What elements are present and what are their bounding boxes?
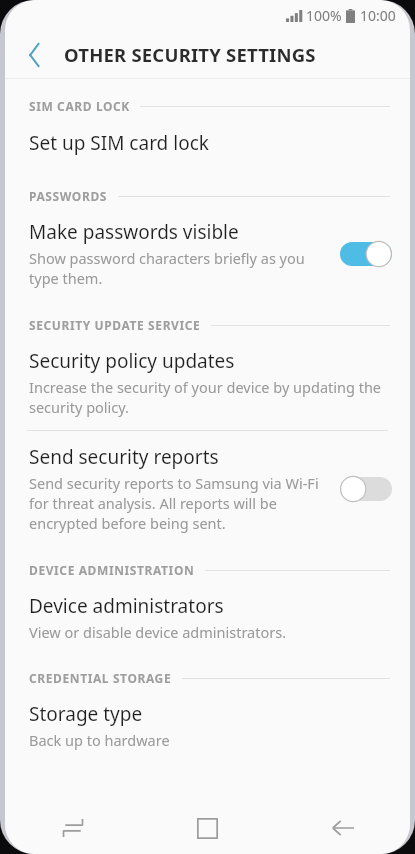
- staticText: Set up SIM card lock: [29, 130, 209, 156]
- staticText: Send security reports to Samsung via Wi-…: [29, 473, 330, 533]
- staticText: Storage type: [29, 701, 143, 727]
- staticText: OTHER SECURITY SETTINGS: [64, 42, 316, 67]
- button[interactable]: Storage type: [5, 686, 410, 762]
- staticText: View or disable device administrators.: [29, 622, 287, 642]
- staticText: SECURITY UPDATE SERVICE: [29, 317, 201, 333]
- button[interactable]: Toggle on: [340, 239, 392, 269]
- staticText: Send security reports: [29, 444, 219, 470]
- button[interactable]: Toggle off: [340, 474, 392, 504]
- staticText: Make passwords visible: [29, 219, 239, 245]
- staticText: SIM CARD LOCK: [29, 98, 130, 114]
- staticText: Device administrators: [29, 593, 224, 619]
- staticText: 100%: [306, 6, 342, 25]
- button[interactable]: Back: [13, 33, 57, 77]
- staticText: CREDENTIAL STORAGE: [29, 670, 172, 686]
- button[interactable]: Home: [140, 802, 275, 854]
- button[interactable]: Send security reports: [5, 431, 410, 549]
- button[interactable]: Device administrators: [5, 578, 410, 657]
- staticText: Show password characters briefly as you …: [29, 248, 330, 288]
- staticText: DEVICE ADMINISTRATION: [29, 562, 195, 578]
- button[interactable]: Security policy updates: [5, 333, 410, 430]
- button[interactable]: Back: [275, 802, 410, 854]
- staticText: 10:00: [360, 6, 396, 25]
- staticText: PASSWORDS: [29, 188, 108, 204]
- staticText: Increase the security of your device by …: [29, 377, 392, 417]
- staticText: Security policy updates: [29, 348, 235, 374]
- staticText: Back up to hardware: [29, 730, 170, 750]
- button[interactable]: Set up SIM card lock: [5, 114, 410, 174]
- button[interactable]: Make passwords visible: [5, 204, 410, 302]
- button[interactable]: Recents: [5, 802, 140, 854]
